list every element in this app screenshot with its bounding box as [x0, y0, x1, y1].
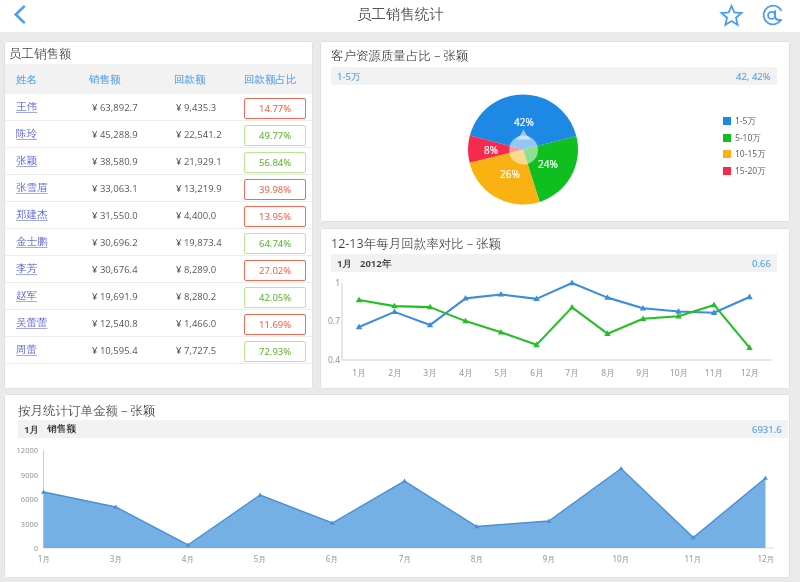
staticText: 1月 [24, 423, 39, 436]
button[interactable]: 郑建杰 [4, 202, 313, 229]
staticText: 周蕾 [16, 343, 37, 356]
staticText: 郑建杰 [16, 208, 48, 221]
staticText: 1月 [337, 257, 352, 270]
staticText: 24% [538, 157, 558, 171]
button[interactable]: 1-5万 [723, 113, 756, 129]
staticText: 12月 [746, 553, 786, 564]
staticText: ¥ 8,280.2 [176, 290, 217, 303]
staticText: 5月 [481, 367, 521, 379]
staticText: 10-15万 [735, 148, 766, 160]
staticText: 6月 [312, 553, 352, 564]
button[interactable]: 王伟 [4, 94, 313, 121]
staticText: 12-13年每月回款率对比－张颖 [331, 235, 502, 252]
staticText: 销售额 [47, 423, 76, 435]
staticText: 42, 42% [736, 70, 771, 83]
staticText: 11月 [673, 553, 713, 564]
staticText: ¥ 31,550.0 [92, 209, 138, 222]
staticText: 9月 [529, 553, 569, 564]
button[interactable]: Mention [759, 1, 787, 29]
staticText: ¥ 19,691.9 [92, 290, 138, 303]
staticText: 14.77% [259, 102, 292, 115]
staticText: 5-10万 [735, 132, 761, 144]
staticText: ¥ 21,929.1 [176, 155, 222, 168]
staticText: 0.66 [752, 257, 771, 270]
staticText: 0.4 [320, 354, 340, 366]
staticText: 26% [500, 167, 520, 181]
staticText: 赵军 [16, 289, 37, 302]
staticText: 回款额 [174, 73, 206, 86]
staticText: ¥ 1,466.0 [176, 317, 217, 330]
staticText: ¥ 7,727.5 [176, 344, 217, 357]
staticText: 3000 [4, 519, 38, 529]
staticText: 6月 [517, 367, 557, 379]
staticText: 11月 [694, 367, 734, 379]
staticText: ¥ 12,540.8 [92, 317, 138, 330]
staticText: 56.84% [259, 156, 292, 169]
staticText: 6000 [4, 494, 38, 504]
staticText: 姓名 [16, 73, 37, 86]
staticText: 销售额 [89, 73, 121, 86]
staticText: 7月 [552, 367, 592, 379]
staticText: 9000 [4, 470, 38, 480]
staticText: 4月 [446, 367, 486, 379]
staticText: 2012年 [360, 257, 392, 270]
staticText: 张雪眉 [16, 181, 48, 194]
staticText: ¥ 9,435.3 [176, 101, 217, 114]
button[interactable]: 陈玲 [4, 121, 313, 148]
staticText: 回款额占比 [244, 73, 297, 86]
staticText: ¥ 19,873.4 [176, 236, 222, 249]
staticText: 72.93% [259, 345, 292, 358]
staticText: 按月统计订单金额－张颖 [18, 403, 156, 419]
staticText: 员工销售统计 [357, 5, 444, 23]
button[interactable]: 5-10万 [723, 130, 761, 146]
staticText: 12000 [4, 445, 38, 455]
staticText: 49.77% [259, 129, 292, 142]
button[interactable]: 张颖 [4, 148, 313, 175]
staticText: ¥ 30,696.2 [92, 236, 138, 249]
staticText: 1月 [24, 553, 64, 564]
staticText: 张颖 [16, 154, 37, 167]
staticText: 王伟 [16, 100, 37, 113]
staticText: 2月 [375, 367, 415, 379]
staticText: 9月 [623, 367, 663, 379]
staticText: 7月 [385, 553, 425, 564]
button[interactable]: Back [5, 1, 35, 31]
staticText: 6931.6 [752, 423, 782, 436]
staticText: 8月 [588, 367, 628, 379]
button[interactable]: 张雪眉 [4, 175, 313, 202]
button[interactable]: 10-15万 [723, 146, 766, 162]
staticText: 3月 [96, 553, 136, 564]
staticText: 10月 [659, 367, 699, 379]
staticText: 11.69% [259, 318, 292, 331]
staticText: 客户资源质量占比－张颖 [331, 48, 469, 64]
staticText: ¥ 10,595.4 [92, 344, 138, 357]
staticText: 1 [320, 277, 340, 289]
button[interactable]: Favorite [717, 1, 745, 29]
button[interactable]: 金士鹏 [4, 229, 313, 256]
button[interactable]: 15-20万 [723, 163, 766, 179]
staticText: 李芳 [16, 262, 37, 275]
button[interactable]: 吴蕾蕾 [4, 310, 313, 337]
staticText: ¥ 63,892.7 [92, 101, 138, 114]
button[interactable]: 李芳 [4, 256, 313, 283]
staticText: 1月 [339, 367, 379, 379]
button[interactable]: 赵军 [4, 283, 313, 310]
staticText: 1-5万 [337, 70, 361, 83]
staticText: 8% [484, 143, 499, 157]
staticText: ¥ 38,580.9 [92, 155, 138, 168]
staticText: 39.98% [259, 183, 292, 196]
staticText: 42% [514, 115, 534, 129]
staticText: 陈玲 [16, 127, 37, 140]
button[interactable]: 周蕾 [4, 337, 313, 364]
staticText: 8月 [457, 553, 497, 564]
staticText: 13.95% [259, 210, 292, 223]
staticText: 42.05% [259, 291, 292, 304]
staticText: ¥ 4,400.0 [176, 209, 217, 222]
staticText: ¥ 8,289.0 [176, 263, 217, 276]
staticText: 27.02% [259, 264, 292, 277]
staticText: ¥ 22,541.2 [176, 128, 222, 141]
staticText: 1-5万 [735, 115, 756, 127]
staticText: 3月 [410, 367, 450, 379]
staticText: 金士鹏 [16, 235, 48, 248]
staticText: 0.7 [320, 315, 340, 327]
